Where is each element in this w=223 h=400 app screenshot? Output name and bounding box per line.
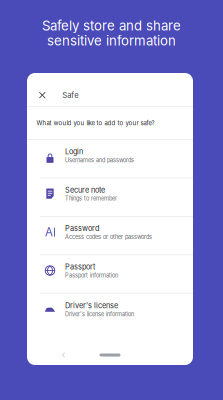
staticText: Safe: [62, 90, 79, 100]
staticText: Driver's license information: [65, 311, 134, 317]
staticText: Secure note: [65, 185, 105, 194]
button[interactable]: Passport: [27, 255, 193, 294]
button[interactable]: Driver's license: [27, 294, 193, 332]
button[interactable]: Login: [27, 140, 193, 178]
staticText: Driver's license: [65, 301, 118, 310]
button[interactable]: A: [27, 217, 193, 255]
staticText: Usernames and passwords: [65, 157, 134, 164]
staticText: Passport information: [65, 272, 118, 279]
staticText: Passport: [65, 262, 95, 271]
staticText: Access codes or other passwords: [65, 234, 152, 240]
staticText: Login: [65, 147, 83, 156]
staticText: Safely store and share: [42, 18, 181, 34]
staticText: sensitive information: [47, 33, 176, 49]
button[interactable]: Close: [32, 85, 52, 105]
staticText: A: [45, 225, 53, 239]
staticText: What would you like to add to your safe?: [36, 119, 154, 127]
staticText: Password: [65, 224, 99, 233]
staticText: Things to remember: [65, 195, 117, 202]
button[interactable]: Secure note: [27, 178, 193, 217]
